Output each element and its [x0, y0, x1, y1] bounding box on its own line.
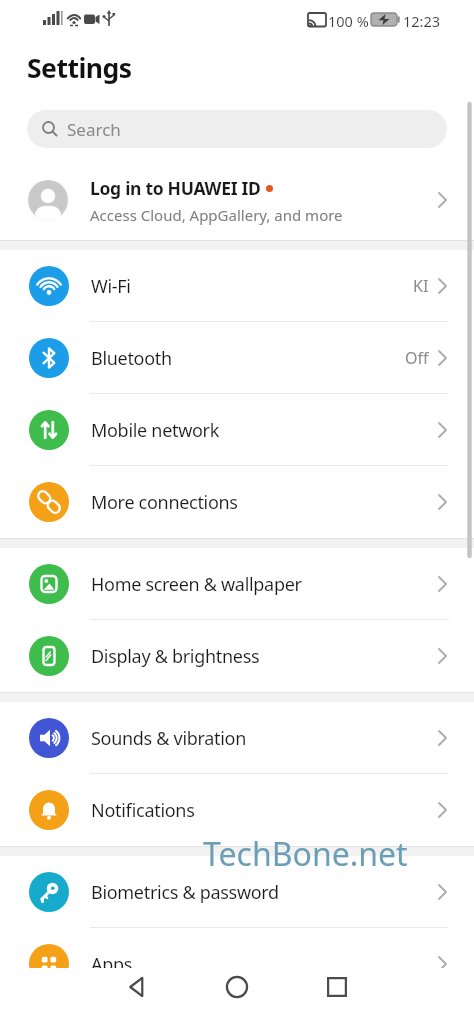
button[interactable]: More connections	[0, 466, 474, 538]
staticText: Home screen & wallpaper	[91, 572, 302, 597]
button[interactable]: Mobile network	[0, 394, 474, 466]
staticText: Notifications	[91, 798, 195, 823]
staticText: TechBone.net	[203, 832, 408, 876]
staticText: Access Cloud, AppGallery, and more	[90, 205, 343, 225]
staticText: Mobile network	[91, 418, 220, 443]
button[interactable]	[187, 968, 287, 1014]
staticText: KI	[413, 275, 429, 297]
button[interactable]: Home screen & wallpaper	[0, 548, 474, 620]
staticText: Display & brightness	[91, 644, 260, 669]
staticText: Search	[67, 118, 121, 141]
button[interactable]: Wi-Fi	[0, 250, 474, 322]
staticText: More connections	[91, 490, 238, 515]
staticText: Biometrics & password	[91, 880, 279, 905]
button[interactable]: Log in to HUAWEI ID	[0, 148, 474, 240]
staticText: 100 %	[328, 11, 369, 31]
button[interactable]	[87, 968, 187, 1014]
staticText: Settings	[27, 50, 132, 86]
button[interactable]: Notifications	[0, 774, 474, 846]
button[interactable]: Biometrics & password	[0, 856, 474, 928]
staticText: Apps	[91, 952, 133, 977]
button[interactable]: Search	[27, 110, 447, 148]
staticText: Bluetooth	[91, 346, 172, 371]
staticText: Log in to HUAWEI ID	[90, 176, 261, 200]
staticText: Wi-Fi	[91, 274, 131, 299]
button[interactable]: Display & brightness	[0, 620, 474, 692]
button[interactable]: Sounds & vibration	[0, 702, 474, 774]
staticText: Sounds & vibration	[91, 726, 247, 751]
button[interactable]: Bluetooth	[0, 322, 474, 394]
staticText: Off	[405, 347, 429, 369]
staticText: 12:23	[403, 11, 441, 31]
button[interactable]: Apps	[0, 928, 474, 1000]
button[interactable]	[287, 968, 387, 1014]
